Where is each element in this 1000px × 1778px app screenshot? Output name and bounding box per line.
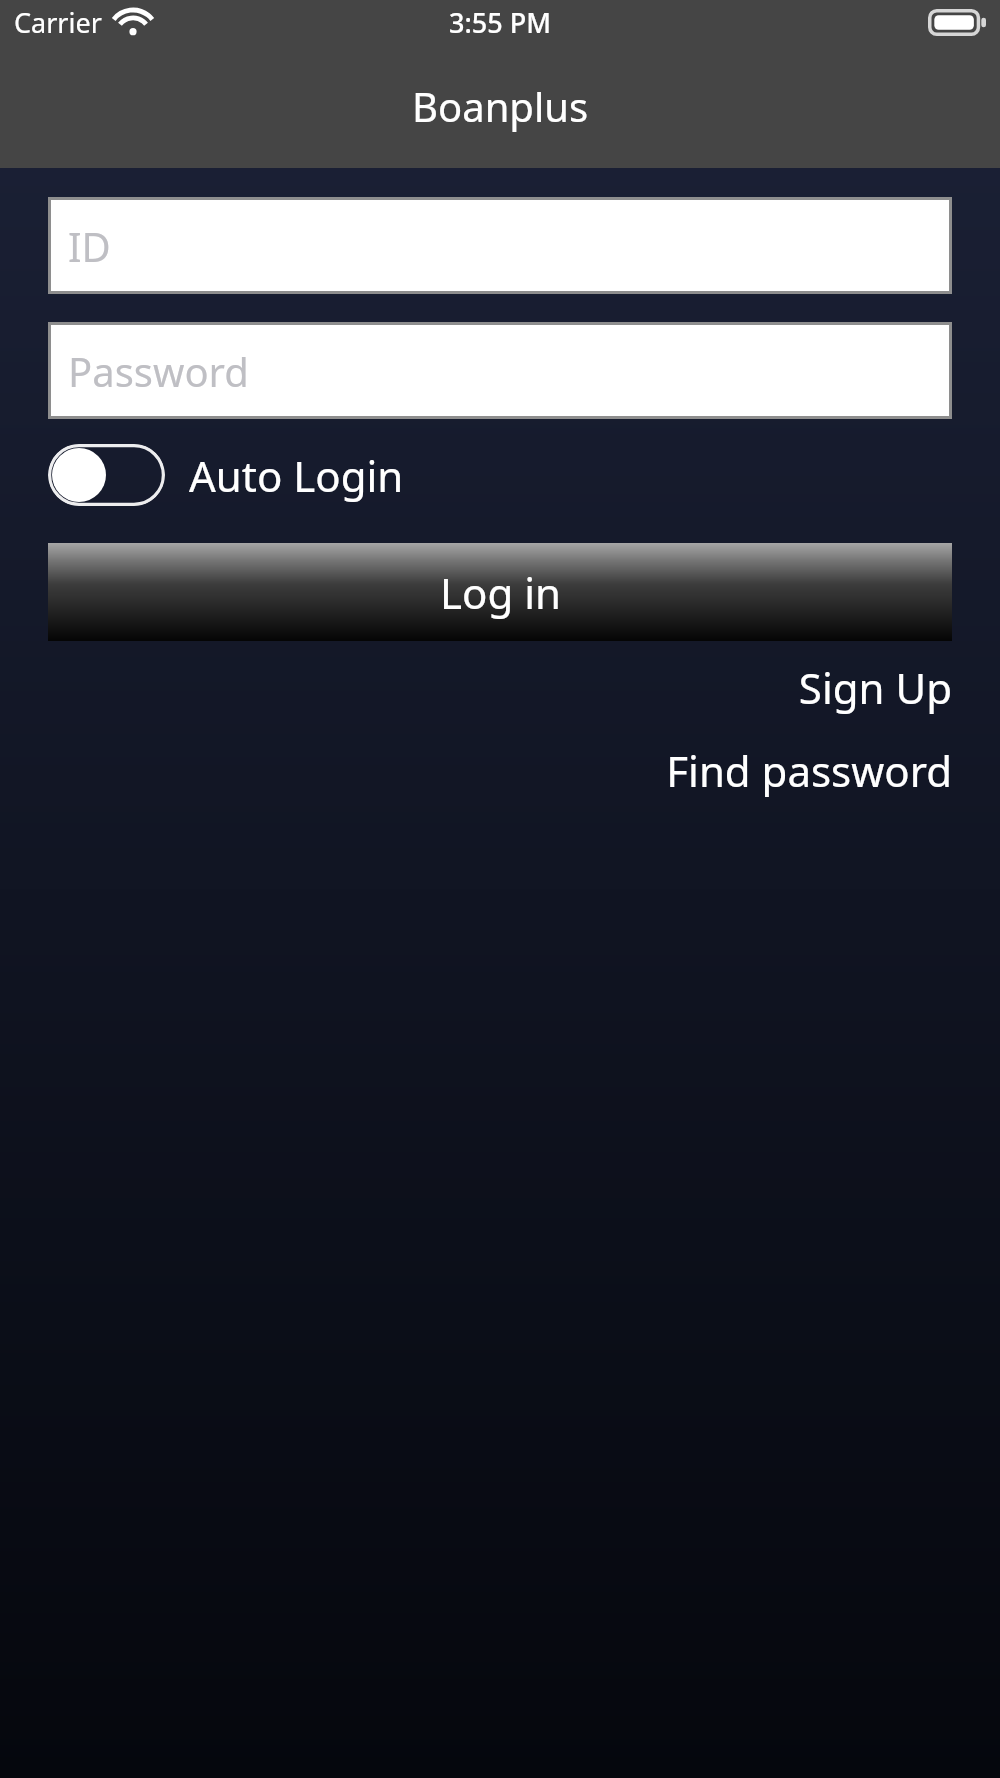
button[interactable]: Sign Up xyxy=(48,659,952,716)
staticText: Log in xyxy=(440,564,561,621)
button[interactable]: ID xyxy=(51,200,949,291)
staticText: Boanplus xyxy=(412,79,589,133)
button[interactable]: Find password xyxy=(48,742,952,799)
button[interactable]: Auto Login toggle, off xyxy=(48,444,165,506)
staticText: Auto Login xyxy=(189,447,404,504)
button[interactable]: Log in xyxy=(48,543,952,641)
staticText: Password xyxy=(68,344,249,398)
staticText: Find password xyxy=(666,742,952,799)
button[interactable]: Password xyxy=(51,325,949,416)
staticText: ID xyxy=(68,219,111,273)
staticText: Carrier xyxy=(14,4,102,41)
staticText: 3:55 PM xyxy=(449,4,551,41)
staticText: Sign Up xyxy=(798,659,952,716)
